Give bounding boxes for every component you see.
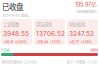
button[interactable]: 上证指数: [1, 19, 32, 45]
staticText: 1234: [1, 48, 9, 52]
staticText: 深证成指: [36, 21, 52, 27]
staticText: 创业板指: [69, 21, 85, 27]
button[interactable]: 深证成指: [34, 19, 65, 45]
staticText: 3247.52: [69, 30, 94, 37]
staticText: 195.97亿: [75, 1, 97, 8]
staticText: 北向资金净流入: [76, 9, 97, 14]
staticText: 13706.52: [36, 30, 65, 37]
staticText: +1.56%: [80, 40, 91, 44]
staticText: 3860: [90, 48, 98, 52]
staticText: 已收盘: [2, 1, 23, 12]
staticText: 较上一日增量 +713亿: [67, 60, 97, 64]
button[interactable]: 创业板指: [67, 19, 98, 45]
staticText: +42.17: [69, 40, 79, 44]
staticText: +128.44: [36, 40, 48, 44]
staticText: 两市成交额共计 22308亿: [2, 60, 37, 64]
staticText: +0.93%: [14, 40, 26, 44]
staticText: 上证指数: [3, 21, 19, 27]
staticText: +36.41: [3, 40, 13, 44]
staticText: 2024-04-01 星期二: [2, 13, 30, 18]
staticText: +1.70%: [49, 40, 60, 44]
staticText: 3948.55: [3, 30, 29, 37]
